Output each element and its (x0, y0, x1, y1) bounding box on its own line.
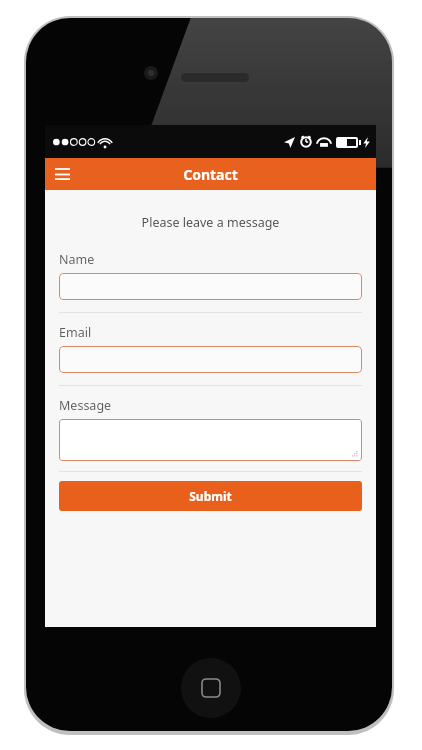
button[interactable]: Open navigation menu (45, 158, 79, 190)
staticText: Message (59, 397, 112, 414)
button[interactable] (59, 419, 362, 461)
staticText: Name (59, 251, 95, 268)
staticText: Please leave a message (59, 214, 362, 231)
staticText: Contact (183, 165, 238, 184)
button[interactable]: Submit (59, 481, 362, 511)
staticText: Email (59, 324, 92, 341)
staticText: Submit (189, 488, 232, 504)
button[interactable] (59, 346, 362, 373)
button[interactable] (59, 273, 362, 300)
